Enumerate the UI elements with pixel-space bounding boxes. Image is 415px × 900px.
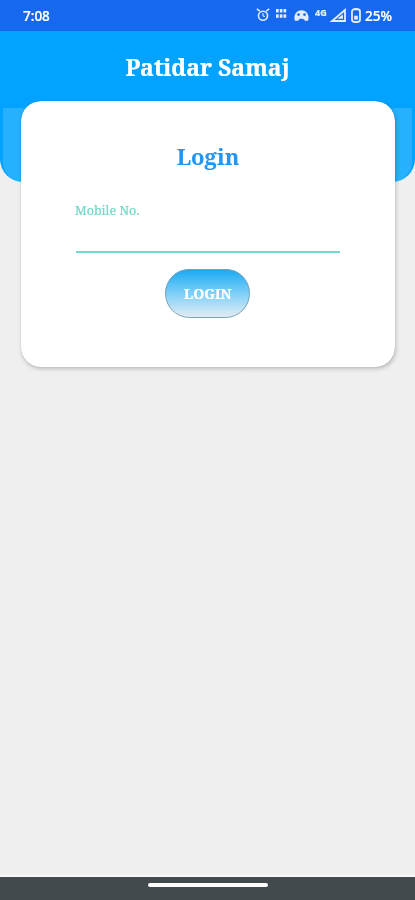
staticText: 7:08 xyxy=(23,7,50,25)
staticText: Mobile No. xyxy=(75,202,140,219)
staticText: Patidar Samaj xyxy=(0,51,415,82)
other: Home xyxy=(148,883,268,887)
staticText: Login xyxy=(21,141,395,171)
button[interactable]: Mobile No. xyxy=(76,198,340,253)
staticText: 4G xyxy=(315,6,327,18)
staticText: 25% xyxy=(365,7,392,25)
button[interactable]: LOGIN xyxy=(165,269,250,318)
staticText: LOGIN xyxy=(184,284,232,303)
